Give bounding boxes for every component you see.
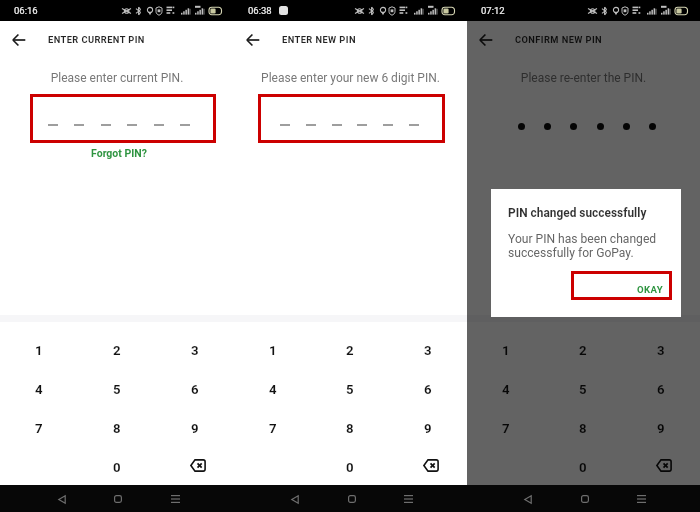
staticText: 8	[579, 421, 587, 436]
button[interactable]: 0	[311, 446, 389, 485]
button[interactable]: Home	[574, 488, 596, 510]
button[interactable]: 6	[622, 368, 700, 407]
button[interactable]: Home	[341, 488, 363, 510]
button[interactable]: 1	[0, 329, 78, 368]
button[interactable]: 0	[78, 446, 156, 485]
button[interactable]: Recents	[164, 488, 186, 510]
button[interactable]: 8	[544, 407, 622, 446]
staticText: 0	[346, 460, 354, 475]
staticText: 7	[269, 421, 277, 436]
button[interactable]: 7	[0, 407, 78, 446]
staticText: PIN changed successfully	[508, 206, 647, 220]
button[interactable]: 5	[544, 368, 622, 407]
button[interactable]: 4	[0, 368, 78, 407]
button[interactable]: OKAY	[574, 274, 669, 297]
staticText: 07:12	[481, 5, 505, 16]
staticText: 1	[269, 343, 277, 358]
button[interactable]: 5	[311, 368, 389, 407]
button[interactable]: 4	[234, 368, 311, 407]
button[interactable]: Back	[241, 28, 265, 52]
button[interactable]: 3	[389, 329, 467, 368]
staticText: 3	[424, 343, 432, 358]
button[interactable]: 9	[622, 407, 700, 446]
other: Backspace	[423, 459, 439, 472]
button[interactable]: 0	[544, 446, 622, 485]
staticText: 5	[579, 382, 587, 397]
button[interactable]: Back	[7, 28, 31, 52]
button[interactable]: 2	[544, 329, 622, 368]
staticText: 9	[657, 421, 665, 436]
button[interactable]: Back	[51, 488, 73, 510]
staticText: 06:38	[248, 5, 272, 16]
staticText: 4	[35, 382, 43, 397]
staticText: 7	[502, 421, 510, 436]
staticText: 2	[579, 343, 587, 358]
staticText: 2	[113, 343, 121, 358]
staticText: 6	[424, 382, 432, 397]
staticText: 8	[113, 421, 121, 436]
button[interactable]: 1	[467, 329, 544, 368]
staticText: 0	[579, 460, 587, 475]
button[interactable]: Back	[284, 488, 306, 510]
button[interactable]: 3	[156, 329, 234, 368]
other: Backspace	[656, 459, 672, 472]
staticText: 6	[657, 382, 665, 397]
button[interactable]: 7	[234, 407, 311, 446]
staticText: 5	[113, 382, 121, 397]
staticText: 1	[502, 343, 510, 358]
button[interactable]: Back	[474, 28, 498, 52]
staticText: 2	[346, 343, 354, 358]
staticText: 9	[191, 421, 199, 436]
button[interactable]: Backspace	[156, 446, 234, 485]
staticText: 4	[269, 382, 277, 397]
button[interactable]: 9	[389, 407, 467, 446]
staticText: 0	[113, 460, 121, 475]
button[interactable]: 1	[234, 329, 311, 368]
button[interactable]: 9	[156, 407, 234, 446]
staticText: ENTER CURRENT PIN	[48, 34, 145, 45]
button[interactable]	[261, 97, 442, 140]
button[interactable]: Back	[517, 488, 539, 510]
staticText: 9	[424, 421, 432, 436]
staticText: 5	[346, 382, 354, 397]
staticText: ENTER NEW PIN	[282, 34, 356, 45]
button[interactable]: Backspace	[389, 446, 467, 485]
staticText: 06:16	[14, 5, 38, 16]
button[interactable]: Home	[107, 488, 129, 510]
button[interactable]: Recents	[397, 488, 419, 510]
button[interactable]: Forgot PIN?	[2, 147, 236, 159]
staticText: Please enter current PIN.	[0, 71, 234, 85]
other: Backspace	[190, 459, 206, 472]
button[interactable]: 8	[311, 407, 389, 446]
button[interactable]: Recents	[630, 488, 652, 510]
button[interactable]: 3	[622, 329, 700, 368]
button[interactable]: Backspace	[622, 446, 700, 485]
staticText: 1	[35, 343, 43, 358]
staticText: 3	[657, 343, 665, 358]
staticText: 3	[191, 343, 199, 358]
staticText: OKAY	[637, 284, 664, 295]
button[interactable]: 6	[389, 368, 467, 407]
staticText: Please re-enter the PIN.	[467, 71, 700, 85]
button[interactable]: 7	[467, 407, 544, 446]
staticText: CONFIRM NEW PIN	[515, 34, 603, 45]
staticText: 6	[191, 382, 199, 397]
button[interactable]	[33, 97, 213, 140]
staticText: 7	[35, 421, 43, 436]
button[interactable]: 5	[78, 368, 156, 407]
button[interactable]: 6	[156, 368, 234, 407]
staticText: Please enter your new 6 digit PIN.	[234, 71, 467, 85]
button[interactable]: 2	[311, 329, 389, 368]
staticText: 4	[502, 382, 510, 397]
staticText: 8	[346, 421, 354, 436]
button[interactable]: 8	[78, 407, 156, 446]
button[interactable]: 2	[78, 329, 156, 368]
button[interactable]: 4	[467, 368, 544, 407]
staticText: Your PIN has been changed successfully f…	[508, 232, 673, 260]
